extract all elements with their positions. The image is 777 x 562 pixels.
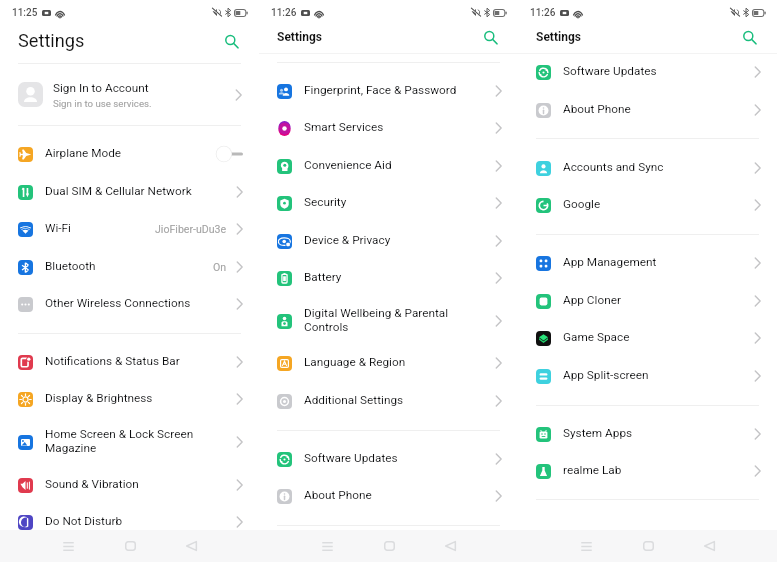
staticText: Game Space bbox=[563, 330, 742, 344]
button[interactable]: Airplane Mode bbox=[0, 135, 259, 173]
button[interactable]: Notifications & Status Bar bbox=[0, 343, 259, 381]
staticText: Settings bbox=[18, 30, 85, 51]
staticText: On bbox=[213, 261, 227, 273]
button[interactable]: About Phone bbox=[518, 91, 777, 129]
staticText: Do Not Disturb bbox=[45, 514, 224, 528]
button[interactable]: Dual SIM & Cellular Network bbox=[0, 173, 259, 211]
staticText: About Phone bbox=[304, 488, 483, 502]
staticText: Settings bbox=[277, 30, 322, 44]
button[interactable]: Sign In to Account bbox=[0, 64, 259, 125]
button[interactable]: Home bbox=[117, 533, 143, 559]
button[interactable]: Accounts and Sync bbox=[518, 149, 777, 187]
staticText: Fingerprint, Face & Password bbox=[304, 83, 483, 97]
staticText: Dual SIM & Cellular Network bbox=[45, 184, 224, 198]
button[interactable]: Convenience Aid bbox=[259, 147, 518, 185]
staticText: Battery bbox=[304, 270, 483, 284]
button[interactable]: Home Screen & Lock Screen Magazine bbox=[0, 418, 259, 466]
button[interactable]: App Management bbox=[518, 244, 777, 282]
staticText: Security bbox=[304, 195, 483, 209]
staticText: Additional Settings bbox=[304, 393, 483, 407]
staticText: App Management bbox=[563, 255, 742, 269]
staticText: Smart Services bbox=[304, 120, 483, 134]
staticText: Software Updates bbox=[563, 64, 742, 78]
button[interactable]: Home bbox=[376, 533, 402, 559]
button[interactable]: Search bbox=[220, 30, 242, 52]
staticText: Home Screen & Lock Screen Magazine bbox=[45, 427, 224, 455]
button[interactable]: Wi-Fi bbox=[0, 210, 259, 248]
button[interactable]: Google bbox=[518, 186, 777, 224]
button[interactable]: Digital Wellbeing & Parental Controls bbox=[259, 297, 518, 345]
button[interactable]: Sound & Vibration bbox=[0, 466, 259, 504]
staticText: Other Wireless Connections bbox=[45, 296, 224, 310]
staticText: Airplane Mode bbox=[45, 146, 217, 160]
button[interactable]: About Phone bbox=[259, 477, 518, 515]
staticText: Device & Privacy bbox=[304, 233, 483, 247]
staticText: Language & Region bbox=[304, 355, 483, 369]
button[interactable]: Back bbox=[178, 533, 204, 559]
button[interactable]: Recent apps bbox=[314, 533, 340, 559]
button[interactable]: Fingerprint, Face & Password bbox=[259, 72, 518, 110]
button[interactable]: Language & Region bbox=[259, 344, 518, 382]
button[interactable]: Software Updates bbox=[518, 53, 777, 91]
staticText: Sign in to use services. bbox=[53, 98, 152, 109]
button[interactable]: Device & Privacy bbox=[259, 222, 518, 260]
button[interactable]: Search bbox=[738, 26, 760, 48]
button[interactable]: realme Lab bbox=[518, 452, 777, 490]
button[interactable]: Game Space bbox=[518, 319, 777, 357]
button[interactable]: Battery bbox=[259, 259, 518, 297]
staticText: 11:26 bbox=[530, 7, 556, 19]
button[interactable]: Back bbox=[437, 533, 463, 559]
button[interactable]: System Apps bbox=[518, 415, 777, 453]
staticText: Bluetooth bbox=[45, 259, 213, 273]
staticText: Notifications & Status Bar bbox=[45, 354, 224, 368]
staticText: Software Updates bbox=[304, 451, 483, 465]
staticText: Sound & Vibration bbox=[45, 477, 224, 491]
button[interactable]: Software Updates bbox=[259, 440, 518, 478]
button[interactable]: Bluetooth bbox=[0, 248, 259, 286]
staticText: System Apps bbox=[563, 426, 742, 440]
staticText: Accounts and Sync bbox=[563, 160, 742, 174]
button[interactable]: Back bbox=[696, 533, 722, 559]
button[interactable]: Do Not Disturb bbox=[0, 503, 259, 541]
staticText: Convenience Aid bbox=[304, 158, 483, 172]
button[interactable]: Security bbox=[259, 184, 518, 222]
button[interactable]: Search bbox=[479, 26, 501, 48]
button[interactable]: Display & Brightness bbox=[0, 380, 259, 418]
button[interactable]: Additional Settings bbox=[259, 382, 518, 420]
staticText: Sign In to Account bbox=[53, 81, 149, 95]
staticText: 11:25 bbox=[12, 7, 38, 19]
staticText: JioFiber-uDu3e bbox=[155, 223, 227, 235]
staticText: Display & Brightness bbox=[45, 391, 224, 405]
staticText: Settings bbox=[536, 30, 581, 44]
button[interactable]: Recent apps bbox=[573, 533, 599, 559]
staticText: App Cloner bbox=[563, 293, 742, 307]
button[interactable]: Home bbox=[635, 533, 661, 559]
button[interactable]: App Cloner bbox=[518, 282, 777, 320]
button[interactable]: Recent apps bbox=[55, 533, 81, 559]
staticText: Google bbox=[563, 197, 742, 211]
staticText: realme Lab bbox=[563, 463, 742, 477]
button[interactable]: Smart Services bbox=[259, 109, 518, 147]
staticText: 11:26 bbox=[271, 7, 297, 19]
button[interactable]: App Split-screen bbox=[518, 357, 777, 395]
staticText: Digital Wellbeing & Parental Controls bbox=[304, 306, 483, 334]
staticText: App Split-screen bbox=[563, 368, 742, 382]
button[interactable]: Other Wireless Connections bbox=[0, 285, 259, 323]
staticText: Wi-Fi bbox=[45, 221, 155, 235]
staticText: About Phone bbox=[563, 102, 742, 116]
